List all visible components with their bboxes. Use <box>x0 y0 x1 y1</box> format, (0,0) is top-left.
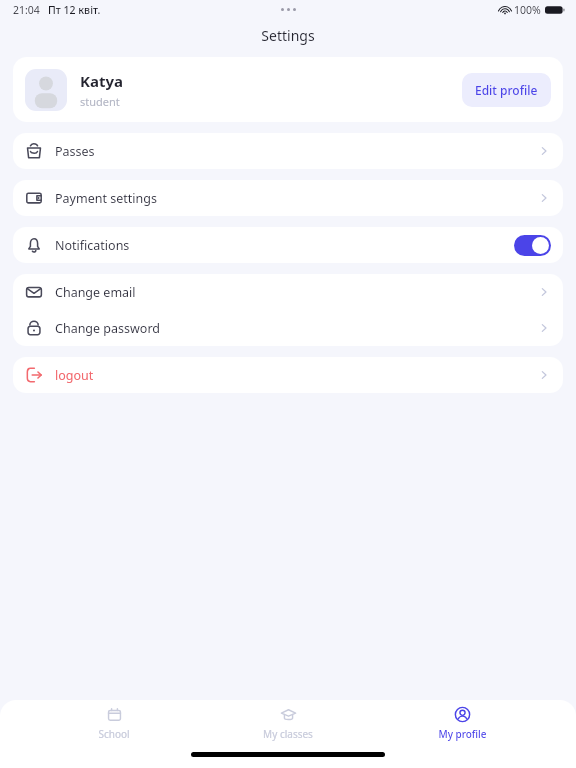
staticText: Katya <box>80 71 124 91</box>
button[interactable]: Change password <box>13 310 563 346</box>
button[interactable]: Notifications <box>13 227 563 263</box>
staticText: Settings <box>261 26 315 45</box>
staticText: 100% <box>514 3 541 17</box>
staticText: 21:04 <box>13 3 40 17</box>
button[interactable]: Passes <box>13 133 563 169</box>
staticText: Edit profile <box>475 82 538 98</box>
button[interactable]: My profile <box>402 700 522 741</box>
button[interactable]: Edit profile <box>462 73 551 107</box>
button[interactable]: Payment settings <box>13 180 563 216</box>
staticText: My classes <box>263 727 313 741</box>
button[interactable]: Notifications toggle <box>514 235 551 256</box>
staticText: Пт 12 квіт. <box>48 3 101 17</box>
button[interactable]: School <box>54 700 174 741</box>
staticText: Change email <box>55 284 136 301</box>
staticText: My profile <box>438 727 487 741</box>
staticText: logout <box>55 367 94 384</box>
staticText: Change password <box>55 320 161 337</box>
button[interactable]: Change email <box>13 274 563 310</box>
staticText: School <box>98 727 130 741</box>
staticText: Passes <box>55 143 95 160</box>
button[interactable]: My classes <box>228 700 348 741</box>
staticText: Payment settings <box>55 190 157 207</box>
staticText: Notifications <box>55 237 130 254</box>
staticText: student <box>80 94 120 109</box>
button[interactable]: logout <box>13 357 563 393</box>
